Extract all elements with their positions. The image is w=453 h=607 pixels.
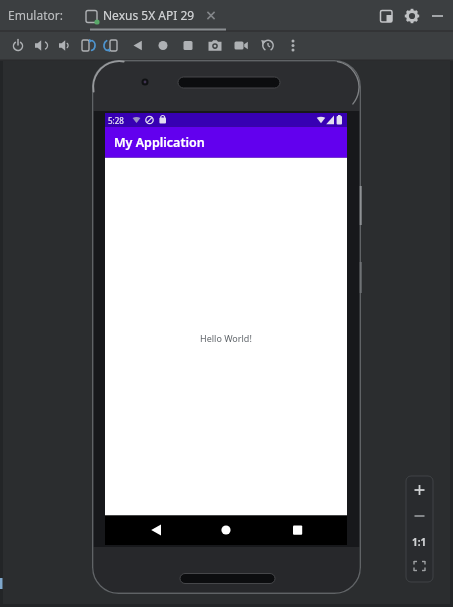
button[interactable]	[258, 35, 278, 55]
button[interactable]	[282, 518, 312, 542]
button[interactable]	[283, 35, 303, 55]
button[interactable]	[205, 35, 225, 55]
button[interactable]	[101, 35, 121, 55]
button[interactable]	[430, 8, 446, 24]
button[interactable]	[407, 478, 432, 502]
button[interactable]	[231, 35, 251, 55]
button[interactable]	[153, 35, 173, 55]
button[interactable]	[78, 35, 98, 55]
staticText: 5:28	[108, 115, 124, 126]
staticText: Hello World!	[200, 332, 252, 344]
staticText: Nexus 5X API 29	[103, 7, 195, 23]
button[interactable]	[407, 504, 432, 528]
button[interactable]	[178, 35, 198, 55]
button[interactable]	[407, 556, 432, 580]
button[interactable]	[407, 530, 432, 554]
button[interactable]	[404, 8, 420, 24]
button[interactable]	[378, 8, 394, 24]
staticText: 1:1	[412, 535, 427, 549]
button[interactable]	[211, 518, 241, 542]
button[interactable]	[80, 2, 225, 29]
button[interactable]	[54, 35, 74, 55]
staticText: My Application	[114, 134, 205, 151]
button[interactable]	[31, 35, 51, 55]
button[interactable]	[128, 35, 148, 55]
staticText: Emulator:	[8, 7, 63, 23]
button[interactable]	[8, 35, 28, 55]
button[interactable]	[142, 518, 172, 542]
button[interactable]	[204, 8, 220, 24]
